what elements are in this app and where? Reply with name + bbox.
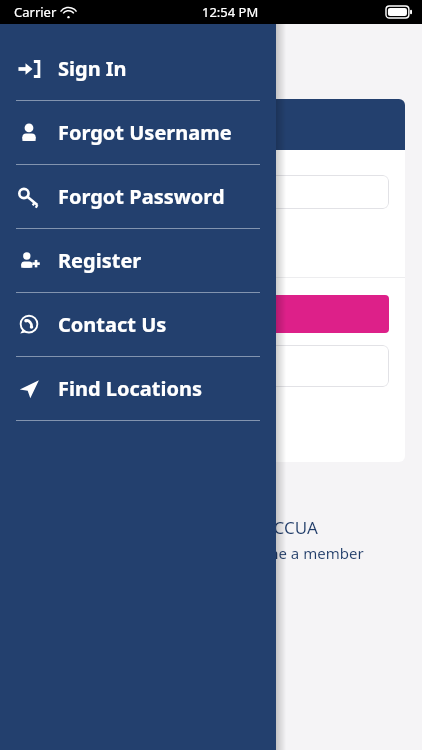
button[interactable]: Forgot Username	[0, 101, 276, 164]
staticText: 12:54 PM	[202, 3, 259, 21]
staticText: Find Locations	[58, 375, 202, 402]
staticText: Register	[58, 247, 142, 274]
staticText: Forgot Username	[58, 119, 232, 146]
staticText: Username	[35, 112, 128, 138]
button[interactable]: Register	[0, 229, 276, 292]
staticText: Forgot Password	[58, 183, 225, 210]
button[interactable]: Register	[33, 345, 389, 387]
button[interactable]: Contact Us	[0, 293, 276, 356]
button[interactable]	[33, 175, 389, 209]
staticText: Join SCCUA	[230, 516, 318, 539]
button[interactable]: Sign In	[33, 295, 389, 333]
button[interactable]: Forgot Password	[0, 165, 276, 228]
button[interactable]: Sign In	[0, 37, 276, 100]
staticText: Carrier	[14, 3, 57, 21]
staticText: Contact Us	[58, 311, 167, 338]
staticText: Become a member	[230, 543, 364, 563]
staticText: Sign In	[58, 55, 127, 82]
button[interactable]: Find Locations	[0, 357, 276, 420]
staticText: Register	[178, 355, 245, 377]
